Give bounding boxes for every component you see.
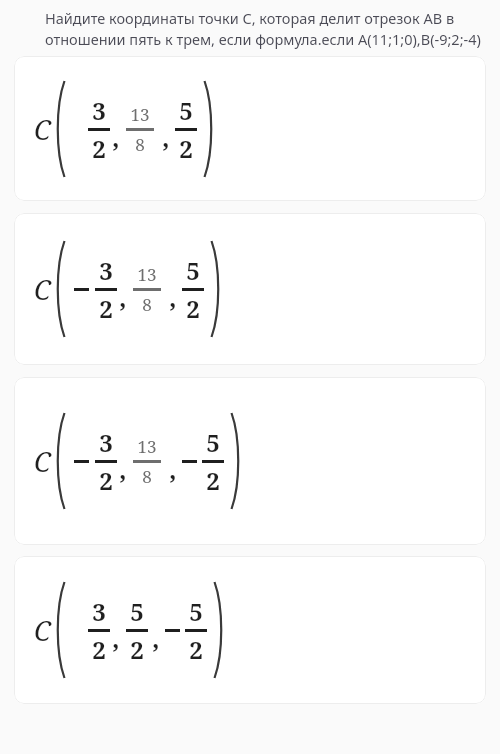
staticText: 5 — [186, 254, 200, 287]
staticText: 3 — [92, 595, 106, 628]
staticText: , — [112, 620, 120, 655]
button[interactable]: C — [14, 213, 486, 365]
staticText: 2 — [189, 633, 203, 666]
staticText: , — [162, 119, 170, 154]
staticText: 3 — [99, 254, 113, 287]
staticText: 2 — [179, 132, 193, 165]
staticText: , — [119, 451, 127, 486]
staticText: 13 — [137, 263, 157, 286]
staticText: 5 — [130, 595, 144, 628]
staticText: Найдите координаты точки C, которая дели… — [45, 8, 484, 50]
staticText: , — [112, 119, 120, 154]
button[interactable]: C — [14, 56, 486, 201]
staticText: , — [169, 279, 177, 314]
staticText: , — [169, 451, 177, 486]
staticText: , — [152, 620, 160, 655]
staticText: 5 — [189, 595, 203, 628]
staticText: 2 — [99, 292, 113, 325]
staticText: 13 — [137, 435, 157, 458]
staticText: 5 — [179, 94, 193, 127]
staticText: , — [119, 279, 127, 314]
staticText: 2 — [92, 132, 106, 165]
staticText: 2 — [99, 464, 113, 497]
staticText: 2 — [206, 464, 220, 497]
staticText: 8 — [142, 465, 152, 488]
button[interactable]: C — [14, 377, 486, 545]
staticText: 3 — [99, 426, 113, 459]
staticText: 2 — [130, 633, 144, 666]
staticText: C — [34, 111, 51, 148]
staticText: 8 — [142, 293, 152, 316]
staticText: C — [34, 443, 51, 480]
staticText: 5 — [206, 426, 220, 459]
staticText: C — [34, 271, 51, 308]
staticText: 8 — [135, 133, 145, 156]
staticText: C — [34, 612, 51, 649]
staticText: 2 — [92, 633, 106, 666]
button[interactable]: C — [14, 556, 486, 704]
staticText: 3 — [92, 94, 106, 127]
staticText: 2 — [186, 292, 200, 325]
staticText: 13 — [130, 103, 150, 126]
